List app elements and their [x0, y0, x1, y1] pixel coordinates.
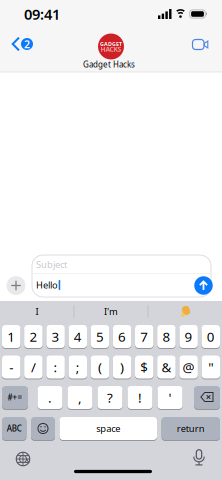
staticText: 5 [96, 328, 104, 345]
button[interactable] [31, 416, 55, 440]
button[interactable]: ABC [2, 416, 26, 440]
staticText: $ [140, 358, 148, 376]
button[interactable]: ' [157, 385, 182, 409]
staticText: #+= [7, 392, 22, 403]
staticText: 8 [162, 328, 170, 345]
staticText: & [161, 358, 171, 376]
staticText: ; [76, 358, 80, 376]
button[interactable]: ? [97, 385, 122, 409]
staticText: - [9, 358, 13, 376]
staticText: 6 [118, 328, 126, 345]
staticText: 3 [52, 328, 60, 345]
staticText: , [78, 389, 82, 406]
staticText: I'm [104, 305, 118, 318]
button[interactable]: " [201, 355, 220, 379]
staticText: 2 [24, 37, 30, 51]
staticText: return [177, 422, 205, 435]
staticText: GADGET [100, 40, 122, 48]
staticText: Hello! [36, 279, 61, 291]
staticText: @ [183, 358, 195, 376]
button[interactable] [150, 300, 220, 322]
button[interactable] [194, 276, 213, 295]
button[interactable]: 2 [3, 30, 37, 58]
staticText: ! [138, 389, 142, 406]
button[interactable]: ! [127, 385, 152, 409]
staticText: " [208, 358, 213, 376]
staticText: Gadget Hacks [83, 59, 135, 70]
staticText: 7 [140, 328, 148, 345]
staticText: ? [107, 389, 113, 406]
button[interactable]: ( [91, 355, 109, 379]
button[interactable]: Subject [32, 255, 211, 297]
button[interactable]: GADGET [83, 26, 139, 70]
button[interactable]: 2 [24, 324, 43, 348]
staticText: 2 [29, 328, 37, 345]
button[interactable]: @ [179, 355, 198, 379]
staticText: . [48, 389, 52, 406]
button[interactable]: , [67, 385, 92, 409]
button[interactable]: & [157, 355, 176, 379]
button[interactable]: / [24, 355, 43, 379]
staticText: I [35, 305, 38, 318]
staticText: 0 [207, 328, 215, 345]
staticText: 9 [185, 328, 193, 345]
button[interactable] [13, 449, 33, 469]
button[interactable]: ) [113, 355, 131, 379]
button[interactable] [194, 385, 220, 409]
button[interactable] [6, 276, 25, 295]
button[interactable]: 7 [135, 324, 153, 348]
staticText: 1 [7, 328, 15, 345]
button[interactable]: #+= [2, 385, 28, 409]
button[interactable]: I [2, 300, 72, 322]
button[interactable]: I'm [76, 300, 146, 322]
button[interactable]: : [46, 355, 65, 379]
button[interactable]: $ [135, 355, 153, 379]
staticText: 4 [74, 328, 82, 345]
button[interactable]: 0 [201, 324, 220, 348]
staticText: Subject [36, 258, 67, 271]
button[interactable]: 8 [157, 324, 176, 348]
staticText: space [96, 422, 120, 435]
button[interactable]: 9 [179, 324, 198, 348]
button[interactable]: return [161, 416, 220, 440]
button[interactable]: - [2, 355, 20, 379]
button[interactable] [190, 448, 208, 468]
staticText: HACKS [100, 45, 121, 54]
button[interactable]: 1 [2, 324, 20, 348]
staticText: ) [120, 358, 124, 376]
button[interactable]: ; [68, 355, 87, 379]
staticText: 09:41 [24, 4, 60, 24]
button[interactable]: 3 [46, 324, 65, 348]
button[interactable]: 4 [68, 324, 87, 348]
button[interactable]: space [59, 416, 157, 440]
staticText: ABC [7, 423, 22, 434]
staticText: / [31, 358, 36, 376]
button[interactable]: . [37, 385, 62, 409]
staticText: ( [98, 358, 102, 376]
button[interactable] [189, 35, 213, 53]
staticText: : [54, 358, 58, 376]
staticText: ' [168, 389, 171, 406]
button[interactable]: 5 [91, 324, 109, 348]
button[interactable]: 6 [113, 324, 131, 348]
